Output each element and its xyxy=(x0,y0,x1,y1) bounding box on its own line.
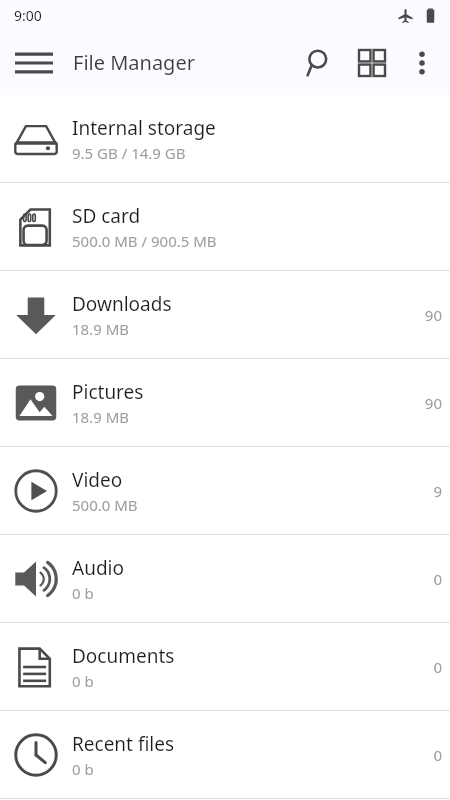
staticText: 9 xyxy=(433,481,442,501)
button[interactable]: Open navigation menu xyxy=(8,37,60,89)
button[interactable]: Downloads xyxy=(0,271,450,358)
staticText: Audio xyxy=(72,555,124,581)
button[interactable]: Documents xyxy=(0,623,450,710)
staticText: 18.9 MB xyxy=(72,407,130,427)
staticText: Pictures xyxy=(72,379,144,405)
staticText: 0 xyxy=(433,569,442,589)
staticText: 0 b xyxy=(72,671,94,691)
button[interactable]: Pictures xyxy=(0,359,450,446)
button[interactable]: Search xyxy=(294,37,346,89)
staticText: Documents xyxy=(72,643,175,669)
staticText: Recent files xyxy=(72,731,175,757)
staticText: 0 b xyxy=(72,759,94,779)
button[interactable]: Change view xyxy=(346,37,398,89)
staticText: 0 b xyxy=(72,583,94,603)
button[interactable]: More options xyxy=(398,39,446,87)
staticText: 500.0 MB xyxy=(72,495,138,515)
button[interactable]: Video xyxy=(0,447,450,534)
staticText: 9.5 GB / 14.9 GB xyxy=(72,143,186,163)
staticText: Internal storage xyxy=(72,115,216,141)
staticText: 0 xyxy=(433,745,442,765)
button[interactable]: Recent files xyxy=(0,711,450,798)
staticText: Downloads xyxy=(72,291,172,317)
staticText: 500.0 MB / 900.5 MB xyxy=(72,231,217,251)
button[interactable]: Audio xyxy=(0,535,450,622)
staticText: Video xyxy=(72,467,123,493)
staticText: 90 xyxy=(424,305,442,325)
button[interactable]: SD card xyxy=(0,183,450,270)
staticText: 90 xyxy=(424,393,442,413)
staticText: File Manager xyxy=(73,49,195,76)
button[interactable]: Internal storage xyxy=(0,95,450,182)
staticText: SD card xyxy=(72,203,141,229)
staticText: 18.9 MB xyxy=(72,319,130,339)
staticText: 0 xyxy=(433,657,442,677)
staticText: 9:00 xyxy=(14,6,42,25)
